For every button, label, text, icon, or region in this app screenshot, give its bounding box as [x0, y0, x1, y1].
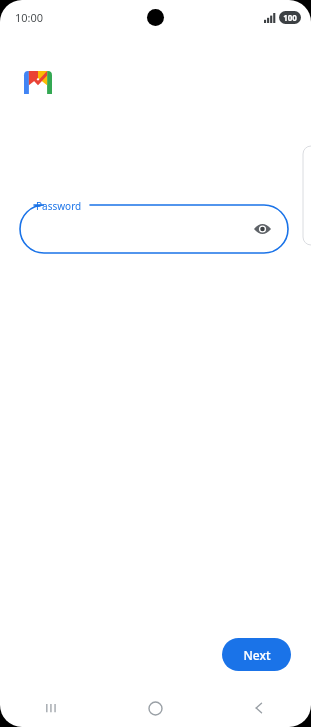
staticText: 10:00 — [15, 10, 44, 25]
button[interactable]: Back — [207, 689, 311, 727]
staticText: Next — [243, 647, 271, 663]
button[interactable]: Home — [103, 689, 207, 727]
staticText: 100 — [283, 12, 297, 23]
button[interactable]: Show password — [250, 217, 274, 241]
button[interactable]: Password — [20, 198, 288, 256]
button[interactable]: Recent apps — [0, 689, 103, 727]
button[interactable]: Next — [222, 638, 291, 671]
staticText: Password — [36, 199, 82, 213]
